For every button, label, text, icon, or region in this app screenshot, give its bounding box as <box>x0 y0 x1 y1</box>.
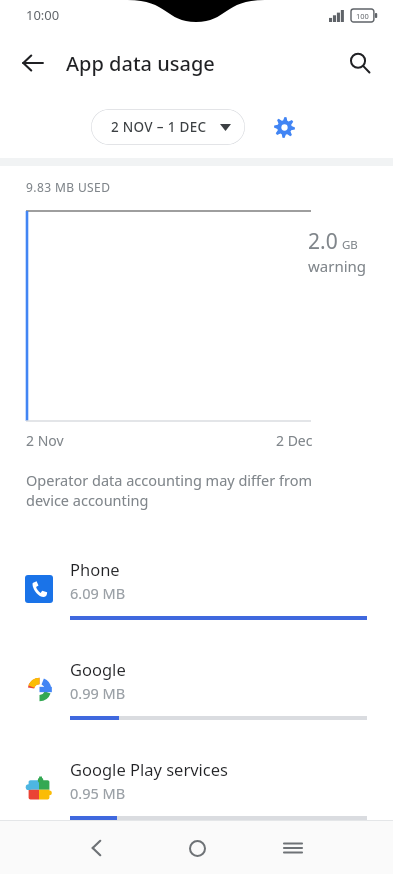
button[interactable]: Search <box>337 40 383 86</box>
button[interactable]: Back <box>73 824 121 872</box>
staticText: 10:00 <box>26 6 60 24</box>
staticText: 2 NOV – 1 DEC <box>111 118 207 136</box>
staticText: Phone <box>70 558 120 580</box>
button[interactable]: Phone <box>0 539 393 639</box>
button[interactable]: Google <box>0 639 393 739</box>
button[interactable]: Recent apps <box>269 824 317 872</box>
staticText: 2 Nov <box>26 431 64 450</box>
button[interactable]: 2 NOV – 1 DEC <box>90 109 246 145</box>
button[interactable]: Home <box>173 824 221 872</box>
button[interactable]: Google Play services <box>0 739 393 839</box>
staticText: Operator data accounting may differ from… <box>26 470 341 511</box>
button[interactable]: Settings <box>264 107 304 147</box>
staticText: Google <box>70 658 126 680</box>
staticText: 2 Dec <box>276 431 313 450</box>
staticText: GB <box>342 237 358 253</box>
staticText: App data usage <box>66 50 215 77</box>
button[interactable]: Back <box>10 40 56 86</box>
staticText: warning <box>308 256 367 276</box>
staticText: 6.09 MB <box>70 583 126 603</box>
staticText: 9.83 MB USED <box>26 179 111 195</box>
staticText: 0.95 MB <box>70 783 126 803</box>
staticText: 100 <box>356 11 369 21</box>
staticText: 2.0 <box>308 227 338 256</box>
staticText: Google Play services <box>70 758 228 780</box>
staticText: 0.99 MB <box>70 683 126 703</box>
